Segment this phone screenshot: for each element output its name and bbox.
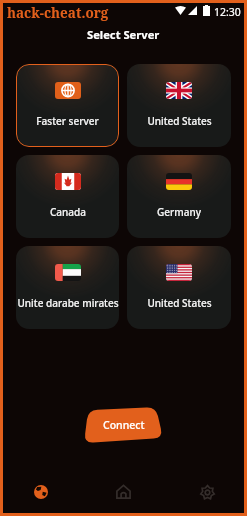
button[interactable]: Settings xyxy=(3,473,244,511)
staticText: Select Server xyxy=(87,27,160,42)
staticText: Connect xyxy=(103,418,145,432)
staticText: Germany xyxy=(157,205,201,219)
button[interactable]: Connect xyxy=(84,407,163,443)
staticText: Canada xyxy=(50,205,86,219)
button[interactable]: Unite darabe mirates xyxy=(16,246,119,329)
button[interactable]: Germany xyxy=(127,155,231,238)
staticText: hack-cheat.org xyxy=(7,4,109,22)
button[interactable]: Servers xyxy=(3,473,78,511)
staticText: Unite darabe mirates xyxy=(17,296,119,310)
staticText: United States xyxy=(147,296,212,310)
staticText: Faster server xyxy=(36,114,99,128)
button[interactable]: Faster server xyxy=(16,64,119,147)
staticText: United States xyxy=(147,114,212,128)
button[interactable]: United States xyxy=(127,246,231,329)
button[interactable]: Canada xyxy=(16,155,119,238)
staticText: 12:30 xyxy=(214,5,241,19)
button[interactable]: United States xyxy=(127,64,231,147)
button[interactable]: Home xyxy=(3,473,244,511)
